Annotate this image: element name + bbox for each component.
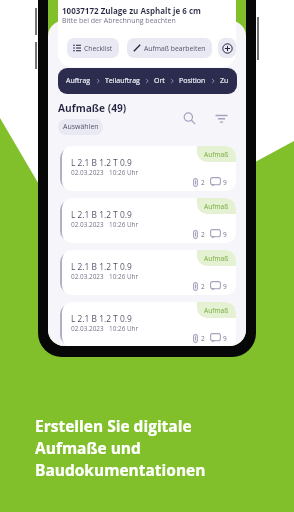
staticText: Aufmaße (49) <box>58 101 127 115</box>
staticText: Aufmaß <box>204 202 229 211</box>
staticText: L 2.1 B 1.2 T 0.9 <box>71 209 132 220</box>
staticText: Aufmaß <box>204 254 229 263</box>
staticText: L 2.1 B 1.2 T 0.9 <box>71 313 132 324</box>
staticText: Aufmaß bearbeiten <box>144 44 206 53</box>
button[interactable]: Hinzufügen <box>218 38 236 58</box>
staticText: 2 <box>201 230 205 239</box>
staticText: 10:26 Uhr <box>109 324 139 333</box>
staticText: Ort <box>154 76 165 86</box>
staticText: 02.03.2023 <box>71 272 104 281</box>
staticText: 2 <box>201 334 205 343</box>
staticText: 9 <box>223 230 227 239</box>
staticText: Aufmaß <box>204 306 229 315</box>
staticText: Zu <box>220 76 229 86</box>
staticText: Checklist <box>84 44 113 53</box>
staticText: 10037172 Zulage zu Asphalt je 6 cm <box>62 5 201 16</box>
button[interactable]: Checklist <box>67 38 119 58</box>
staticText: 02.03.2023 <box>71 168 104 177</box>
button[interactable]: Suchen <box>179 108 199 128</box>
staticText: 2 <box>201 282 205 291</box>
button[interactable]: Aufmaß <box>62 146 236 191</box>
button[interactable]: Aufmaß <box>62 302 236 346</box>
staticText: Auftrag <box>66 76 91 86</box>
button[interactable]: Aufmaß <box>62 250 236 295</box>
staticText: 9 <box>223 334 227 343</box>
staticText: 9 <box>223 282 227 291</box>
staticText: 9 <box>223 178 227 187</box>
staticText: Aufmaß <box>204 150 229 159</box>
staticText: 02.03.2023 <box>71 324 104 333</box>
button[interactable]: Auswählen <box>58 119 103 135</box>
button[interactable]: Aufmaß <box>62 198 236 243</box>
button[interactable]: Aufmaß bearbeiten <box>127 38 212 58</box>
staticText: Bitte bei der Abrechnung beachten <box>62 16 176 26</box>
staticText: 10:26 Uhr <box>109 220 139 229</box>
staticText: L 2.1 B 1.2 T 0.9 <box>71 157 132 168</box>
staticText: 02.03.2023 <box>71 220 104 229</box>
staticText: Erstellen Sie digitale <box>35 415 192 436</box>
button[interactable]: Auftrag <box>58 68 237 94</box>
staticText: L 2.1 B 1.2 T 0.9 <box>71 261 132 272</box>
staticText: Baudokumentationen <box>35 459 206 480</box>
staticText: Aufmaße und <box>35 437 141 458</box>
staticText: Auswählen <box>63 122 99 132</box>
staticText: Position <box>179 76 206 86</box>
button[interactable]: Filter <box>211 108 231 128</box>
staticText: 10:26 Uhr <box>109 168 139 177</box>
staticText: Teilauftrag <box>105 76 140 86</box>
staticText: 2 <box>201 178 205 187</box>
staticText: 10:26 Uhr <box>109 272 139 281</box>
